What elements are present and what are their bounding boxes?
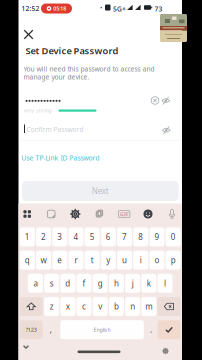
button[interactable]: Hide keyboard [22, 343, 30, 351]
button[interactable]: z [44, 297, 59, 316]
staticText: j [132, 278, 134, 289]
button[interactable]: l [157, 274, 173, 293]
staticText: 1 [25, 232, 30, 242]
staticText: Confirm Password [26, 125, 83, 134]
button[interactable]: 3 [52, 227, 67, 246]
button[interactable]: Settings [70, 209, 80, 219]
staticText: o [154, 255, 159, 265]
button[interactable]: 1 [20, 227, 35, 246]
button[interactable]: Close [22, 28, 34, 40]
staticText: 7 [122, 232, 127, 242]
staticText: m [145, 301, 152, 312]
button[interactable]: u [117, 251, 132, 270]
button[interactable]: 8 [133, 227, 148, 246]
staticText: x [66, 301, 70, 312]
button[interactable]: 6 [101, 227, 116, 246]
staticText: 9 [154, 232, 159, 242]
staticText: a [33, 278, 37, 289]
staticText: 8 [138, 232, 143, 242]
staticText: ?123 [26, 326, 37, 333]
staticText: n [130, 301, 135, 312]
button[interactable]: Clipboard [95, 209, 104, 218]
button[interactable]: 9 [149, 227, 164, 246]
button[interactable]: Use TP-Link ID Password [21, 153, 99, 162]
button[interactable]: o [149, 251, 164, 270]
staticText: 2 [41, 232, 46, 242]
button[interactable]: Delete [157, 297, 180, 316]
staticText: Use TP-Link ID Password [21, 153, 99, 162]
button[interactable]: Next [22, 181, 178, 201]
staticText: GIF [120, 211, 129, 218]
staticText: u [122, 255, 127, 265]
staticText: t [91, 255, 94, 265]
button[interactable]: Comma [44, 320, 58, 339]
staticText: d [65, 278, 70, 289]
button[interactable]: GIF [118, 210, 130, 218]
button[interactable]: t [85, 251, 100, 270]
button[interactable]: e [52, 251, 67, 270]
button[interactable]: Stickers [47, 209, 56, 218]
staticText: w [40, 255, 46, 265]
button[interactable]: r [68, 251, 83, 270]
button[interactable]: 4 [68, 227, 83, 246]
button[interactable]: k [141, 274, 156, 293]
button[interactable]: a [28, 274, 43, 293]
button[interactable]: Show password [161, 96, 170, 105]
button[interactable]: f [76, 274, 92, 293]
staticText: English [93, 326, 110, 333]
staticText: You will need this password to access an… [23, 64, 154, 73]
button[interactable]: Keyboard options [22, 209, 32, 219]
button[interactable]: b [109, 297, 124, 316]
button[interactable]: Emoji [143, 209, 153, 219]
staticText: . [150, 324, 152, 335]
button[interactable]: x [60, 297, 75, 316]
staticText: 5 [90, 232, 95, 242]
staticText: Set Device Password [25, 44, 118, 57]
button[interactable]: Period [145, 320, 157, 339]
button[interactable]: j [125, 274, 140, 293]
button[interactable]: i [133, 251, 148, 270]
button[interactable]: n [125, 297, 140, 316]
staticText: g [98, 278, 103, 289]
button[interactable]: v [93, 297, 108, 316]
staticText: e [57, 255, 62, 265]
button[interactable]: p [166, 251, 181, 270]
button[interactable]: 5 [85, 227, 100, 246]
staticText: 73 [154, 4, 162, 13]
staticText: 12:52 [21, 4, 39, 13]
button[interactable]: d [60, 274, 75, 293]
button[interactable]: Settings [162, 347, 169, 354]
button[interactable]: 7 [117, 227, 132, 246]
button[interactable]: Space [60, 320, 144, 339]
button[interactable]: q [20, 251, 35, 270]
staticText: c [82, 301, 86, 312]
button[interactable]: Shift [20, 297, 43, 316]
button[interactable]: w [36, 251, 51, 270]
button[interactable]: 2 [36, 227, 51, 246]
button[interactable]: y [101, 251, 116, 270]
staticText: Very Strong [23, 107, 51, 114]
button[interactable]: g [93, 274, 108, 293]
staticText: 05:18 [53, 5, 66, 12]
staticText: Next [92, 186, 109, 196]
staticText: h [114, 278, 119, 289]
staticText: 6 [106, 232, 111, 242]
staticText: r [74, 255, 77, 265]
button[interactable]: Symbols [20, 320, 43, 339]
button[interactable]: Done [157, 320, 180, 339]
staticText: , [50, 324, 52, 335]
staticText: z [50, 301, 54, 312]
button[interactable]: m [141, 297, 156, 316]
button[interactable]: Clear [151, 96, 159, 104]
button[interactable]: h [109, 274, 124, 293]
button[interactable]: s [44, 274, 59, 293]
button[interactable]: c [76, 297, 92, 316]
staticText: b [114, 301, 119, 312]
button[interactable]: 0 [166, 227, 181, 246]
staticText: k [147, 278, 151, 289]
staticText: 4 [73, 232, 78, 242]
button[interactable]: Voice typing [167, 209, 177, 219]
staticText: 5G+ [113, 4, 126, 13]
button[interactable]: Show password [162, 126, 171, 134]
staticText: v [98, 301, 102, 312]
